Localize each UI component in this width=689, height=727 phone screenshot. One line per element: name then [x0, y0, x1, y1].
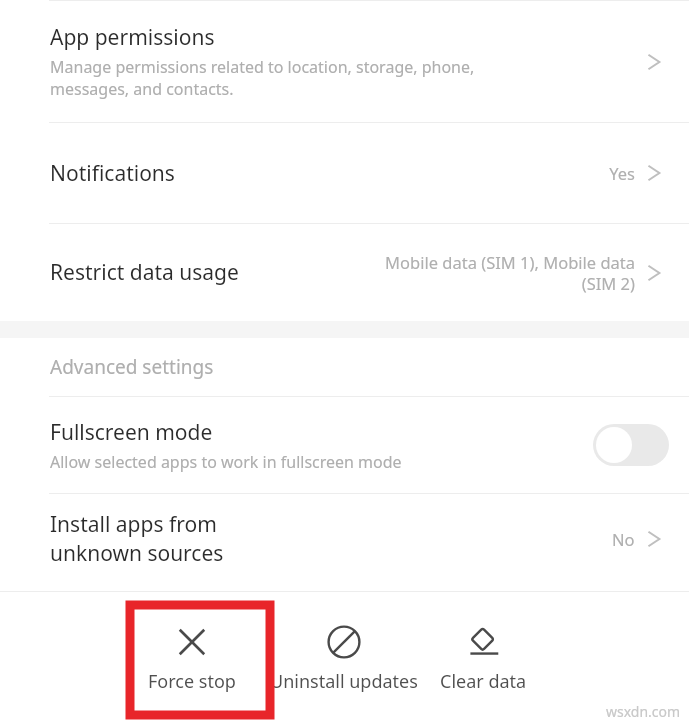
button[interactable]: Uninstall updates [270, 615, 418, 704]
staticText: Manage permissions related to location, … [50, 56, 475, 100]
staticText: No [612, 528, 635, 550]
staticText: Yes [609, 162, 635, 184]
staticText: Notifications [50, 159, 175, 188]
staticText: unknown sources [50, 539, 224, 568]
staticText: Mobile data (SIM 1), Mobile data (SIM 2) [367, 251, 635, 295]
button[interactable]: App permissions [0, 1, 689, 122]
staticText: wsxdn.com [606, 702, 681, 721]
staticText: Allow selected apps to work in fullscree… [50, 451, 402, 473]
staticText: Force stop [148, 669, 236, 694]
button[interactable]: Install apps from [0, 494, 689, 584]
button[interactable]: Fullscreen mode toggle [593, 424, 669, 466]
staticText: Clear data [440, 669, 527, 694]
button[interactable]: Fullscreen mode [0, 397, 689, 493]
staticText: Fullscreen mode [50, 418, 213, 447]
staticText: Restrict data usage [50, 258, 239, 287]
staticText: App permissions [50, 23, 215, 52]
staticText: Advanced settings [50, 354, 214, 380]
staticText: Uninstall updates [270, 669, 418, 694]
staticText: Install apps from [50, 510, 217, 539]
button[interactable]: Notifications [0, 123, 689, 223]
button[interactable]: Restrict data usage [0, 224, 689, 321]
button[interactable]: Force stop [148, 615, 236, 704]
button[interactable]: Clear data [440, 615, 527, 704]
